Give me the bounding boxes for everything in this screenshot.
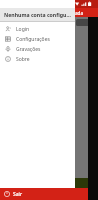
staticText: Gravações [16, 46, 41, 53]
staticText: Login [16, 26, 30, 33]
button[interactable]: Open navigation drawer [3, 9, 11, 17]
staticText: Nenhuma conta configurada [20, 10, 84, 16]
staticText: Sair [13, 191, 23, 198]
button[interactable]: Gravações [0, 44, 75, 54]
staticText: Configurações [16, 36, 50, 43]
button[interactable]: Login [0, 24, 75, 34]
button[interactable]: Sobre [0, 54, 75, 64]
button[interactable]: Configurações [0, 34, 75, 44]
staticText: Nenhuma conta configurada [4, 11, 71, 18]
staticText: Sobre [16, 56, 30, 63]
button[interactable]: Nenhuma conta configurada [0, 8, 75, 21]
button[interactable]: Sair [0, 188, 98, 200]
